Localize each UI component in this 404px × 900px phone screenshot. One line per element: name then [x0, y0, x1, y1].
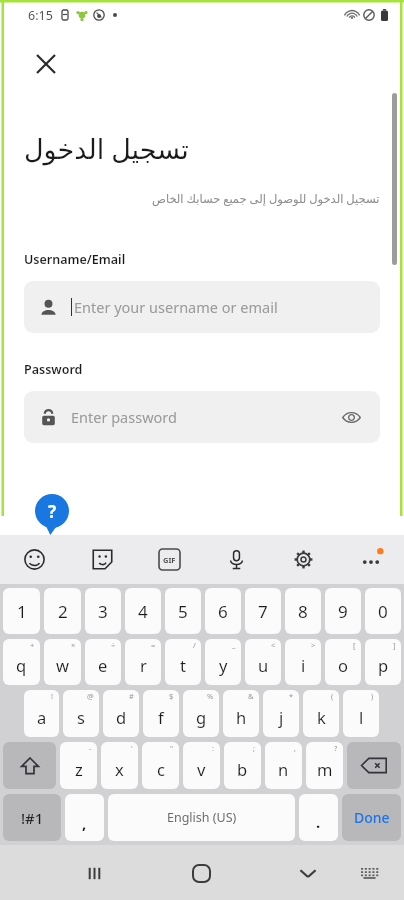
button[interactable]: 2 — [44, 588, 81, 634]
staticText: q — [16, 654, 27, 676]
button[interactable]: h — [223, 690, 259, 737]
staticText: - — [89, 743, 92, 753]
button[interactable]: d — [103, 690, 139, 737]
staticText: % — [207, 691, 214, 701]
staticText: 6:15 — [28, 7, 53, 24]
staticText: 9 — [338, 600, 348, 623]
staticText: # — [129, 691, 134, 701]
button[interactable]: Done — [342, 794, 401, 841]
button[interactable]: Enter password — [24, 391, 380, 443]
staticText: ] — [393, 640, 396, 650]
button[interactable]: r — [125, 639, 161, 685]
button[interactable]: . — [299, 794, 338, 841]
button[interactable]: e — [85, 639, 121, 685]
staticText: h — [236, 706, 247, 728]
staticText: , — [294, 743, 297, 753]
staticText: l — [359, 706, 364, 728]
staticText: ÷ — [111, 640, 116, 650]
button[interactable]: , — [65, 794, 104, 841]
button[interactable]: y — [205, 639, 241, 685]
button[interactable]: Change keyboard — [349, 853, 389, 893]
staticText: n — [278, 758, 289, 780]
button[interactable]: 4 — [125, 588, 161, 634]
staticText: ; — [253, 743, 256, 753]
button[interactable]: c — [142, 742, 179, 789]
staticText: 6 — [218, 600, 228, 623]
button[interactable]: 0 — [365, 588, 401, 634]
staticText: e — [98, 654, 108, 676]
staticText: GIF — [163, 555, 176, 565]
button[interactable]: 5 — [165, 588, 201, 634]
staticText: 0 — [378, 600, 388, 623]
button[interactable]: o — [325, 639, 361, 685]
button[interactable]: Settings — [270, 535, 337, 584]
button[interactable]: n — [265, 742, 302, 789]
staticText: Enter password — [71, 407, 177, 427]
button[interactable]: Enter your username or email — [24, 281, 380, 333]
button[interactable]: English (US) — [108, 794, 295, 841]
staticText: w — [56, 654, 69, 676]
button[interactable]: 3 — [85, 588, 121, 634]
staticText: t — [180, 654, 186, 676]
button[interactable]: u — [245, 639, 281, 685]
staticText: z — [75, 758, 83, 780]
button[interactable]: Home — [178, 850, 224, 896]
staticText: ! — [51, 691, 54, 701]
button[interactable]: f — [143, 690, 179, 737]
button[interactable]: Stickers — [68, 535, 136, 584]
staticText: v — [197, 758, 206, 780]
button[interactable]: Shift — [3, 742, 56, 789]
button[interactable]: !#1 — [3, 794, 61, 841]
button[interactable]: z — [60, 742, 97, 789]
button[interactable]: Voice input — [203, 535, 270, 584]
button[interactable]: Show password — [338, 404, 364, 430]
button[interactable]: v — [183, 742, 220, 789]
button[interactable]: Emoji — [0, 535, 68, 584]
button[interactable]: Backspace — [347, 742, 401, 789]
button[interactable]: 8 — [285, 588, 321, 634]
button[interactable]: 6 — [205, 588, 241, 634]
button[interactable]: 1 — [3, 588, 40, 634]
button[interactable]: a — [24, 690, 59, 737]
staticText: j — [279, 706, 284, 728]
button[interactable]: Close — [24, 42, 68, 86]
staticText: Password — [24, 361, 83, 378]
button[interactable]: s — [63, 690, 99, 737]
button[interactable]: Hide keyboard — [285, 850, 331, 896]
staticText: s — [77, 706, 85, 728]
staticText: < — [271, 640, 276, 650]
staticText: [ — [353, 640, 356, 650]
staticText: _ — [232, 640, 236, 650]
button[interactable]: k — [303, 690, 339, 737]
button[interactable]: GIF — [136, 535, 203, 584]
staticText: r — [140, 654, 147, 676]
button[interactable]: m — [306, 742, 343, 789]
button[interactable]: Recents — [71, 850, 117, 896]
staticText: b — [237, 758, 248, 780]
button[interactable]: More options — [337, 535, 404, 584]
staticText: ? — [48, 500, 57, 523]
staticText: 1 — [17, 600, 27, 623]
staticText: * — [289, 691, 294, 701]
staticText: a — [37, 706, 47, 728]
button[interactable]: l — [343, 690, 379, 737]
button[interactable]: t — [165, 639, 201, 685]
button[interactable]: p — [365, 639, 401, 685]
button[interactable]: 7 — [245, 588, 281, 634]
button[interactable]: j — [263, 690, 299, 737]
staticText: u — [258, 654, 269, 676]
staticText: ) — [371, 691, 374, 701]
staticText: ( — [331, 691, 334, 701]
button[interactable]: q — [3, 639, 40, 685]
staticText: . — [316, 812, 321, 832]
staticText: d — [116, 706, 127, 728]
button[interactable]: Help — [35, 494, 69, 535]
button[interactable]: w — [44, 639, 81, 685]
staticText: g — [196, 706, 207, 728]
button[interactable]: g — [183, 690, 219, 737]
staticText: Enter your username or email — [74, 297, 278, 317]
button[interactable]: 9 — [325, 588, 361, 634]
button[interactable]: b — [224, 742, 261, 789]
button[interactable]: i — [285, 639, 321, 685]
button[interactable]: x — [101, 742, 138, 789]
